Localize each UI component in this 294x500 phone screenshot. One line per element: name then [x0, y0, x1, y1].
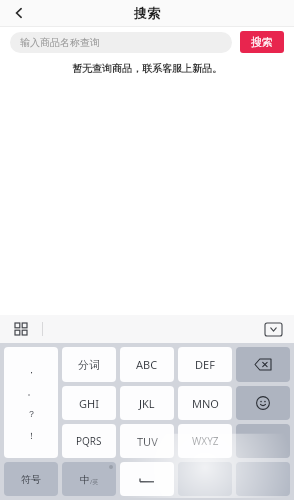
- button[interactable]: [236, 424, 290, 458]
- staticText: 暂无查询商品，联系客服上新品。: [72, 62, 222, 75]
- button[interactable]: 输入商品名称查询: [10, 32, 232, 53]
- staticText: TUV: [137, 434, 158, 449]
- staticText: 搜索: [251, 35, 273, 49]
- staticText: ！: [27, 430, 36, 441]
- staticText: /英: [90, 478, 99, 486]
- button[interactable]: 符号: [4, 462, 58, 496]
- staticText: WXYZ: [192, 434, 219, 448]
- staticText: 搜索: [134, 5, 160, 21]
- button[interactable]: PQRS: [62, 424, 116, 458]
- button[interactable]: Keyboard apps: [0, 315, 42, 343]
- button[interactable]: 搜索: [240, 31, 284, 53]
- staticText: 。: [27, 386, 36, 397]
- button[interactable]: WXYZ: [178, 424, 232, 458]
- staticText: DEF: [195, 357, 215, 372]
- button[interactable]: [178, 462, 232, 496]
- button[interactable]: Backspace: [236, 347, 290, 382]
- button[interactable]: GHI: [62, 386, 116, 420]
- staticText: MNO: [192, 396, 219, 411]
- button[interactable]: [120, 462, 174, 496]
- button[interactable]: 分词: [62, 347, 116, 382]
- button[interactable]: TUV: [120, 424, 174, 458]
- button[interactable]: JKL: [120, 386, 174, 420]
- staticText: ABC: [136, 357, 158, 372]
- staticText: 输入商品名称查询: [20, 36, 100, 49]
- button[interactable]: MNO: [178, 386, 232, 420]
- staticText: 分词: [78, 358, 100, 372]
- button[interactable]: 中: [62, 462, 116, 496]
- button[interactable]: Back: [6, 0, 32, 26]
- staticText: GHI: [79, 396, 99, 411]
- staticText: 符号: [21, 473, 41, 486]
- staticText: 中: [80, 473, 90, 486]
- button[interactable]: ，: [4, 347, 58, 458]
- button[interactable]: Emoji: [236, 386, 290, 420]
- button[interactable]: [236, 462, 290, 496]
- button[interactable]: ABC: [120, 347, 174, 382]
- staticText: ？: [27, 408, 36, 419]
- button[interactable]: Hide keyboard: [252, 315, 294, 343]
- button[interactable]: DEF: [178, 347, 232, 382]
- staticText: PQRS: [76, 434, 102, 448]
- staticText: ，: [27, 364, 36, 375]
- staticText: JKL: [139, 396, 155, 411]
